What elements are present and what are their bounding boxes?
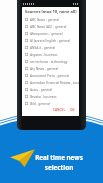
button[interactable]: Aftenposten - general: [25, 30, 79, 37]
button[interactable]: ABC News (AU) - general: [25, 23, 79, 30]
staticText: Bild - general: [30, 102, 50, 106]
staticText: Real time news selection: [35, 153, 83, 171]
button[interactable]: CANCEL: [51, 107, 68, 113]
button[interactable]: ars technica - technology: [25, 58, 79, 65]
staticText: Sources (max 10, none all): [25, 9, 77, 14]
button[interactable]: Ary News - general: [25, 65, 79, 72]
button[interactable]: Al Jazeera English - general: [25, 37, 79, 44]
button[interactable]: Australian Financial Review - business: [25, 79, 79, 86]
staticText: Aftenposten - general: [30, 32, 63, 36]
button[interactable]: Associated Press - general: [25, 72, 79, 79]
staticText: OK: [70, 108, 75, 112]
staticText: CANCEL: [53, 108, 66, 112]
button[interactable]: ABC News - general: [25, 16, 79, 23]
button[interactable]: OK: [68, 107, 77, 113]
staticText: Associated Press - general: [30, 74, 70, 78]
button[interactable]: Axios - general: [25, 86, 79, 93]
staticText: Bevaka - business: [30, 95, 57, 99]
staticText: Ary News - general: [30, 67, 59, 71]
staticText: ANSA.it - general: [30, 46, 56, 50]
staticText: Australian Financial Review - business: [30, 81, 79, 85]
staticText: Al Jazeera English - general: [30, 39, 71, 43]
button[interactable]: ANSA.it - general: [25, 44, 79, 51]
staticText: Axios - general: [30, 88, 53, 92]
staticText: Argaam - business: [30, 53, 58, 57]
staticText: ABC News (AU) - general: [30, 25, 67, 29]
button[interactable]: Bevaka - business: [25, 93, 79, 100]
button[interactable]: Argaam - business: [25, 51, 79, 58]
staticText: ars technica - technology: [30, 60, 68, 64]
button[interactable]: Bild - general: [25, 100, 79, 107]
staticText: ABC News - general: [30, 18, 60, 22]
